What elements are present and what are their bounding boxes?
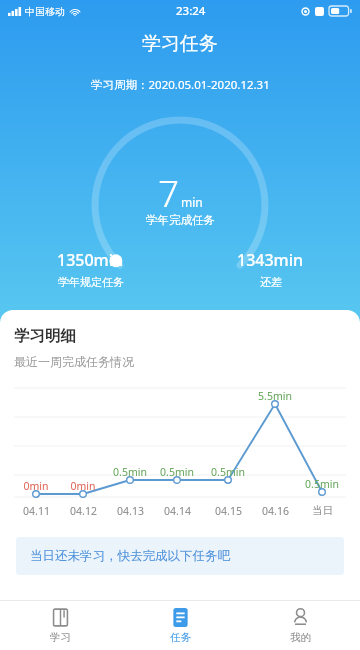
staticText: 我的 xyxy=(290,631,311,644)
staticText: 23:24 xyxy=(176,3,206,19)
staticText: 学习 xyxy=(50,631,71,644)
staticText: 0.5min xyxy=(211,465,245,479)
staticText: 0.5min xyxy=(160,465,194,479)
staticText: 04.16 xyxy=(262,504,289,518)
staticText: 7 xyxy=(158,167,180,217)
staticText: 04.14 xyxy=(164,504,191,518)
staticText: 1350min xyxy=(57,249,124,271)
staticText: 还差 xyxy=(260,275,282,289)
staticText: 0.5min xyxy=(305,477,339,491)
staticText: 学年规定任务 xyxy=(58,275,124,289)
staticText: 0min xyxy=(70,479,96,493)
staticText: 当日还未学习，快去完成以下任务吧 xyxy=(30,548,230,564)
staticText: 04.15 xyxy=(215,504,242,518)
staticText: 当日 xyxy=(312,504,333,517)
button[interactable]: 学习 xyxy=(0,601,120,650)
staticText: 学习周期：2020.05.01-2020.12.31 xyxy=(91,77,270,93)
button[interactable]: 当日还未学习，快去完成以下任务吧 xyxy=(16,537,344,575)
staticText: 1343min xyxy=(237,249,304,271)
staticText: 0.5min xyxy=(113,465,147,479)
staticText: 0min xyxy=(23,479,49,493)
button[interactable]: 任务 xyxy=(120,601,240,650)
staticText: 学习明细 xyxy=(14,326,76,346)
staticText: min xyxy=(181,194,203,210)
staticText: 任务 xyxy=(170,631,191,644)
staticText: 学习任务 xyxy=(142,32,218,56)
button[interactable]: 我的 xyxy=(240,601,360,650)
staticText: 04.12 xyxy=(70,504,97,518)
staticText: 04.11 xyxy=(23,504,50,518)
staticText: 最近一周完成任务情况 xyxy=(14,354,134,369)
staticText: 04.13 xyxy=(117,504,144,518)
staticText: 学年完成任务 xyxy=(146,213,215,227)
staticText: 中国移动 xyxy=(25,5,65,18)
staticText: 5.5min xyxy=(258,389,292,403)
